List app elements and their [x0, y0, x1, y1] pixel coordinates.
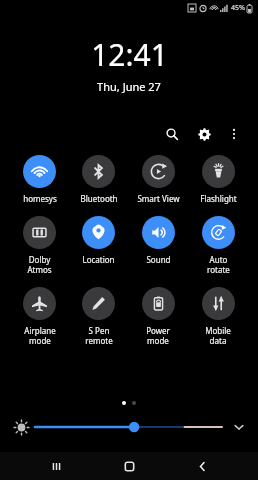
staticText: Smart View	[137, 193, 180, 204]
button[interactable]: Mobile data	[188, 287, 248, 346]
button[interactable]: Power mode	[128, 287, 188, 346]
button[interactable]: Location	[69, 216, 128, 265]
staticText: Bluetooth	[80, 193, 118, 204]
button[interactable]: Bluetooth	[69, 155, 128, 204]
button[interactable]: Expand brightness settings	[230, 418, 248, 436]
button[interactable]: Back	[185, 452, 219, 480]
button[interactable]: S Pen remote	[69, 287, 128, 346]
button[interactable]: Search	[160, 122, 184, 146]
staticText: Auto rotate	[207, 254, 230, 275]
button[interactable]: Auto rotate	[188, 216, 248, 275]
button[interactable]: Settings	[192, 122, 216, 146]
staticText: Thu, June 27	[97, 79, 161, 94]
staticText: Location	[82, 254, 115, 265]
button[interactable]: Brightness	[35, 418, 222, 436]
staticText: Airplane mode	[24, 325, 56, 346]
staticText: 45%	[231, 3, 245, 13]
staticText: Flashlight	[200, 193, 237, 204]
staticText: Power mode	[146, 325, 170, 346]
button[interactable]: Home	[112, 452, 146, 480]
staticText: 12:41	[91, 34, 168, 75]
staticText: Mobile data	[205, 325, 231, 346]
button[interactable]: homesys	[10, 155, 69, 204]
staticText: Dolby Atmos	[27, 254, 52, 275]
button[interactable]: Airplane mode	[10, 287, 69, 346]
button[interactable]: More options	[222, 122, 246, 146]
staticText: S Pen remote	[85, 325, 113, 346]
button[interactable]: Sound	[128, 216, 188, 265]
button[interactable]: Dolby Atmos	[10, 216, 69, 275]
button[interactable]: Recent apps	[39, 452, 73, 480]
button[interactable]: Smart View	[128, 155, 188, 204]
staticText: Sound	[146, 254, 171, 265]
button[interactable]: Flashlight	[188, 155, 248, 204]
staticText: homesys	[23, 193, 57, 204]
